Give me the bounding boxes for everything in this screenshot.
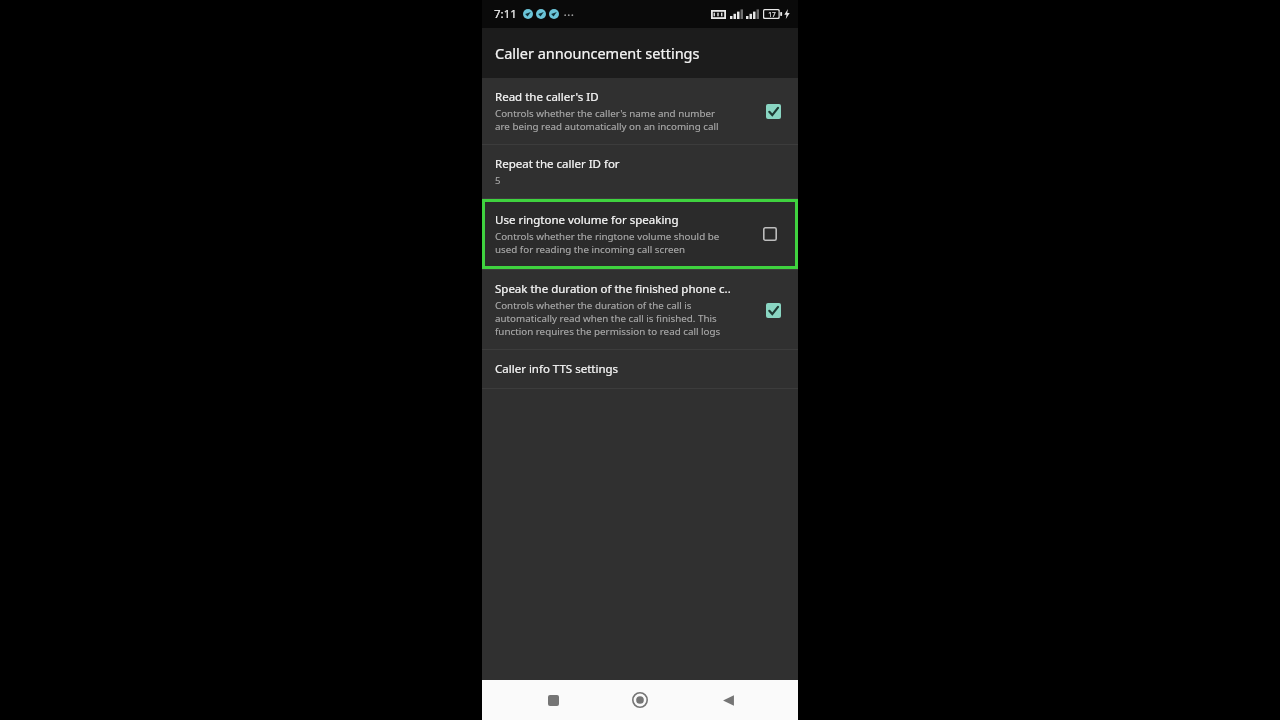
staticText: Read the caller's ID: [495, 89, 599, 105]
staticText: 7:11: [494, 6, 517, 22]
button[interactable]: Use ringtone volume for speaking: [755, 219, 785, 249]
staticText: 17: [768, 10, 776, 19]
button[interactable]: Back: [711, 683, 745, 717]
button[interactable]: Home: [623, 683, 657, 717]
button[interactable]: Read the caller's ID: [482, 78, 798, 144]
button[interactable]: Repeat the caller ID for: [482, 145, 798, 198]
staticText: Controls whether the duration of the cal…: [495, 299, 721, 338]
staticText: Speak the duration of the finished phone…: [495, 281, 731, 297]
staticText: 5: [495, 174, 501, 187]
staticText: Use ringtone volume for speaking: [495, 212, 679, 228]
button[interactable]: Speak the duration of the finished phone…: [758, 295, 788, 325]
staticText: Controls whether the caller's name and n…: [495, 107, 719, 133]
button[interactable]: Speak the duration of the finished phone…: [482, 270, 798, 349]
button[interactable]: Read the caller's ID: [758, 96, 788, 126]
staticText: Caller info TTS settings: [495, 361, 619, 377]
staticText: Caller announcement settings: [495, 43, 700, 63]
staticText: Controls whether the ringtone volume sho…: [495, 230, 720, 256]
staticText: Repeat the caller ID for: [495, 156, 620, 172]
button[interactable]: Use ringtone volume for speaking: [485, 202, 795, 266]
button[interactable]: Caller info TTS settings: [482, 350, 798, 388]
button[interactable]: Overview: [536, 683, 570, 717]
